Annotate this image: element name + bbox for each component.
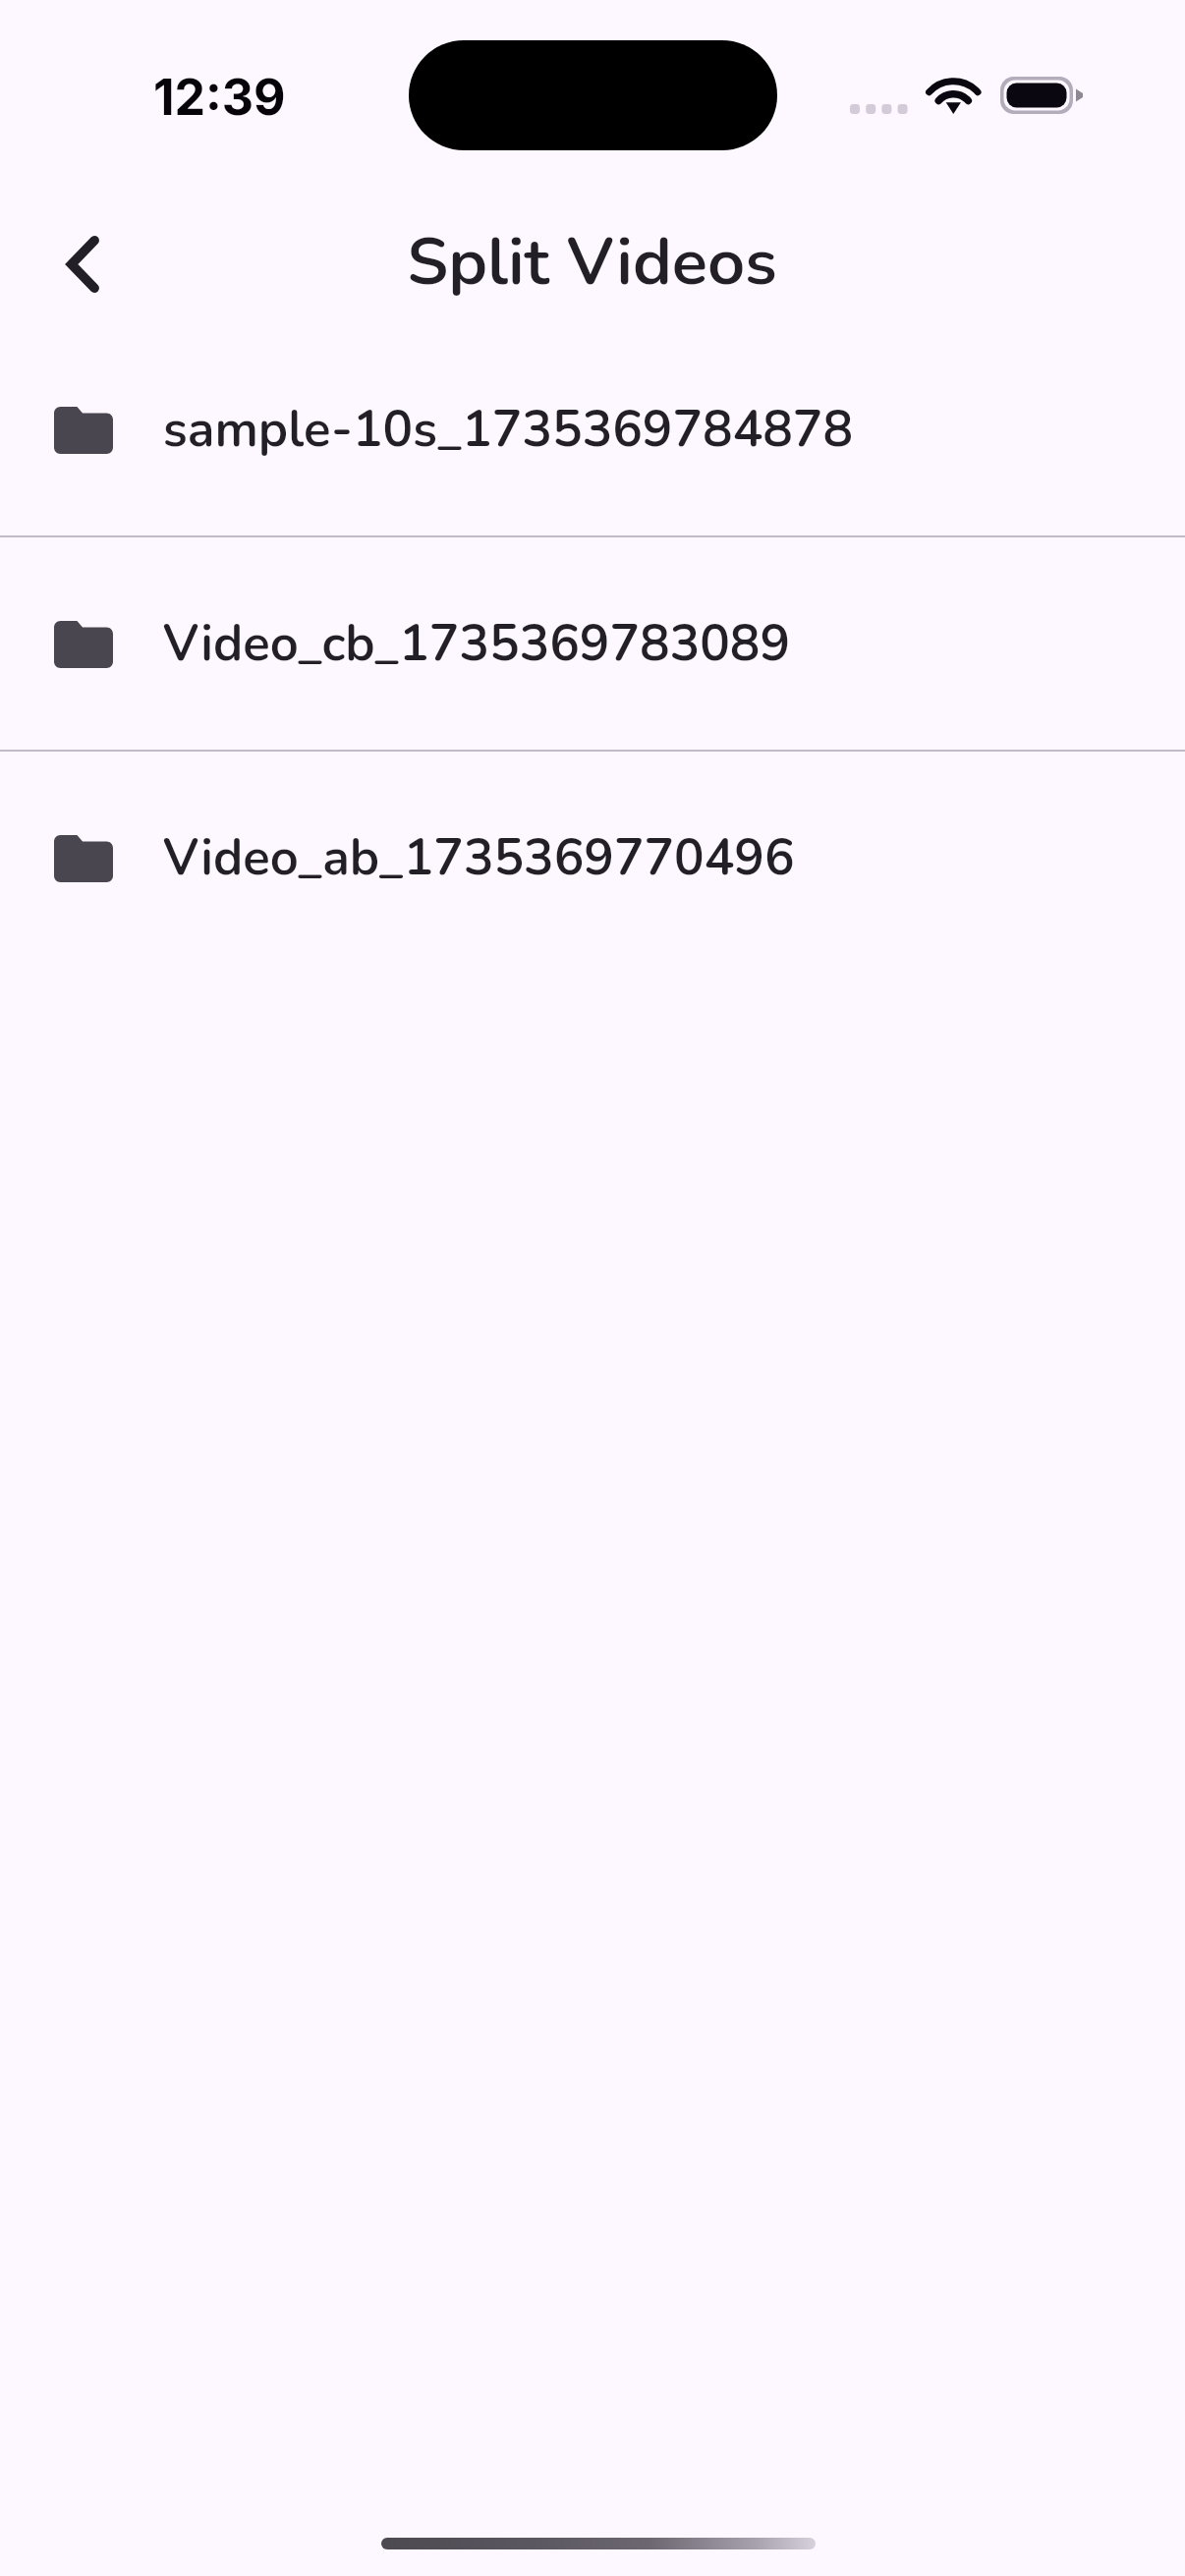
button[interactable]: Video_cb_1735369783089 bbox=[0, 537, 1185, 750]
button[interactable]: Video_ab_1735369770496 bbox=[0, 752, 1185, 964]
staticText: Video_cb_1735369783089 bbox=[163, 609, 791, 678]
staticText: sample-10s_1735369784878 bbox=[163, 395, 854, 464]
button[interactable]: Back bbox=[23, 205, 141, 323]
button[interactable]: sample-10s_1735369784878 bbox=[0, 323, 1185, 535]
staticText: Split Videos bbox=[407, 217, 777, 307]
staticText: Video_ab_1735369770496 bbox=[163, 823, 795, 892]
staticText: 12:39 bbox=[153, 68, 286, 127]
